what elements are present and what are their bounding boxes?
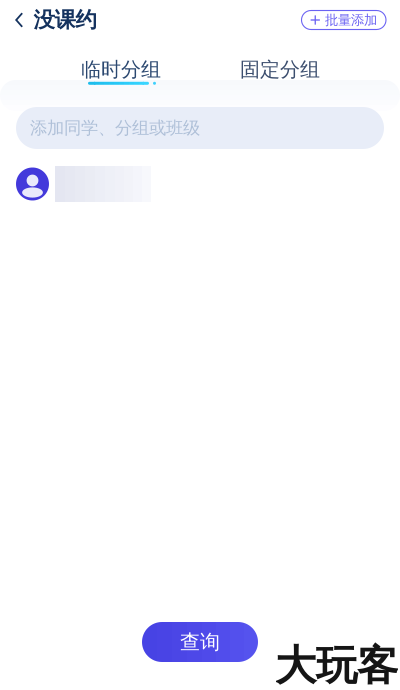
staticText: 固定分组 [240,57,320,82]
button[interactable]: 添加同学、分组或班级 [0,107,400,149]
button[interactable]: 临时分组 [60,61,182,81]
button[interactable]: 固定分组 [219,61,341,81]
staticText: 没课约 [33,7,96,33]
staticText: 批量添加 [325,12,377,28]
button[interactable]: Selected classmate [0,166,400,202]
button[interactable]: Back [0,1,96,39]
staticText: 查询 [180,630,220,654]
button[interactable]: 批量添加 [301,10,386,29]
staticText: 临时分组 [81,57,161,82]
button[interactable]: 查询 [142,622,258,662]
staticText: 添加同学、分组或班级 [30,117,200,139]
staticText: 大玩客 [275,640,398,690]
